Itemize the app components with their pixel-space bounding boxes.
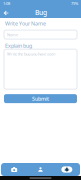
- staticText: Name: [7, 32, 18, 37]
- staticText: 79%: [71, 1, 78, 6]
- button[interactable]: Report bug: [54, 163, 80, 176]
- button[interactable]: Camera: [1, 163, 27, 176]
- staticText: Write the bug you have seen: [7, 51, 55, 56]
- staticText: Write Your Name: [5, 20, 46, 27]
- staticText: 1:08: [3, 1, 10, 6]
- staticText: Bug: [35, 8, 47, 17]
- staticText: Explain bug: [5, 42, 32, 49]
- staticText: Submit: [32, 95, 49, 102]
- button[interactable]: Submit: [4, 94, 77, 103]
- button[interactable]: Back: [1, 7, 10, 18]
- button[interactable]: Profile: [27, 163, 54, 176]
